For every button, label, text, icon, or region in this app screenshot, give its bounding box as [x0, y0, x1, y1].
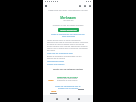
staticText: Lorem ipsum dolor sit amet consectetur a…: [47, 39, 89, 51]
staticText: een slogan hier: [63, 20, 74, 22]
staticText: Bekijk de algemene voorwaarden van dit a…: [47, 55, 89, 59]
button[interactable]: Nederland telt meer consumenten dit jaar: [45, 8, 91, 13]
button[interactable]: More options: [88, 4, 92, 8]
staticText: Vanaf € 9,95 per maand zonder opzegtermi…: [57, 78, 78, 82]
button[interactable]: Veelgestelde vragen: [47, 60, 65, 62]
staticText: Bekijk de voorwaarden van deze actie hie…: [46, 33, 90, 35]
staticText: meer informatie: [62, 35, 75, 37]
button[interactable]: Tabs: [65, 96, 71, 102]
staticText: logo: [48, 78, 54, 81]
button[interactable]: logo: [47, 73, 89, 84]
staticText: Bestel NU en ontvang korting: [53, 68, 83, 71]
button[interactable]: More options: [76, 96, 82, 102]
staticText: Aanbieding van de maand: [57, 76, 78, 78]
button[interactable]: Back: [44, 4, 48, 8]
button[interactable]: Contact met support: [47, 63, 65, 65]
button[interactable]: DIRECT BESTELLEN: [58, 28, 79, 32]
staticText: Merknaam: [60, 16, 76, 20]
button[interactable]: Bookmark: [83, 4, 87, 8]
staticText: Bekijk alle aanbiedingen hier en profite…: [46, 85, 90, 89]
staticText: Nederland telt meer consumenten dit jaar: [45, 9, 91, 12]
staticText: DIRECT BESTELLEN: [60, 29, 77, 31]
staticText: logo: [51, 89, 57, 92]
button[interactable]: Share: [78, 4, 82, 8]
button[interactable]: Home: [54, 96, 60, 102]
button[interactable]: Meer over dit onderwerp lezen: [47, 52, 73, 54]
staticText: Profiteer nu van dit nieuwe voordeel: [46, 24, 90, 26]
